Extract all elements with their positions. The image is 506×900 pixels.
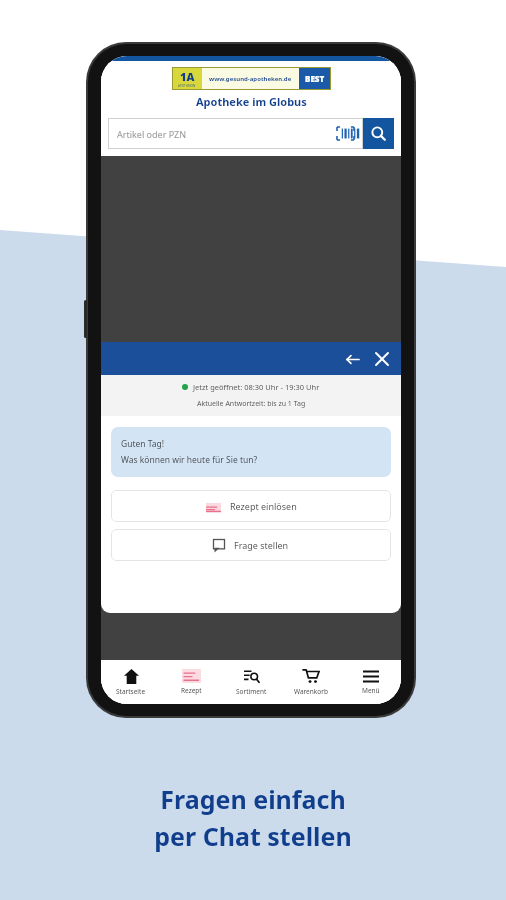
staticText: BEST [305,73,325,84]
staticText: Aktuelle Antwortzeit: bis zu 1 Tag [197,399,306,409]
staticText: Menü [362,686,380,695]
staticText: Sortiment [236,687,267,696]
button[interactable]: Warenkorb [281,660,341,704]
button[interactable]: Zurück [337,344,367,374]
button[interactable]: Sortiment [221,660,281,704]
button[interactable]: Menü [341,660,401,704]
staticText: Guten Tag! [121,438,165,450]
staticText: 1A [180,69,195,84]
staticText: Was können wir heute für Sie tun? [121,454,258,466]
staticText: Apotheke im Globus [196,94,307,109]
staticText: www.gesund-apotheken.de [209,75,292,83]
staticText: per Chat stellen [154,819,352,853]
button[interactable]: Artikel oder PZN [108,118,363,149]
button[interactable]: Schließen [367,344,397,374]
staticText: Artikel oder PZN [117,128,187,140]
button[interactable]: Rezept [161,660,221,704]
staticText: Warenkorb [294,687,328,696]
staticText: Frage stellen [234,539,289,551]
button[interactable]: Frage stellen [111,529,391,561]
staticText: Fragen einfach [160,782,346,816]
button[interactable]: Suchen [363,118,394,149]
staticText: Startseite [116,687,146,696]
staticText: Rezept [181,686,202,695]
staticText: Rezept einlösen [230,500,297,512]
button[interactable]: Rezept einlösen [111,490,391,522]
staticText: Jetzt geöffnet: 08:30 Uhr - 19:30 Uhr [193,382,320,392]
button[interactable]: Startseite [101,660,161,704]
staticText: APOTHEKEN [178,84,196,88]
